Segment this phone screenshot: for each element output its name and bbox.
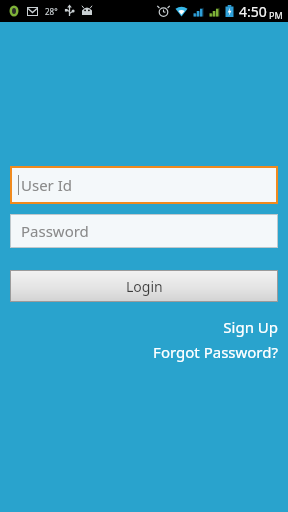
staticText: Password xyxy=(21,221,89,241)
staticText: User Id xyxy=(21,175,73,195)
staticText: Forgot Password? xyxy=(153,342,278,362)
button[interactable]: Password xyxy=(10,214,278,248)
staticText: Login xyxy=(126,277,163,296)
button[interactable]: Forgot Password? xyxy=(148,341,278,363)
button[interactable]: Login xyxy=(10,270,278,302)
staticText: PM xyxy=(269,9,283,21)
button[interactable]: Sign Up xyxy=(178,316,278,338)
staticText: 4:50 xyxy=(239,2,267,21)
staticText: Sign Up xyxy=(223,317,278,337)
button[interactable]: User Id xyxy=(10,166,278,204)
staticText: 28° xyxy=(45,6,58,17)
